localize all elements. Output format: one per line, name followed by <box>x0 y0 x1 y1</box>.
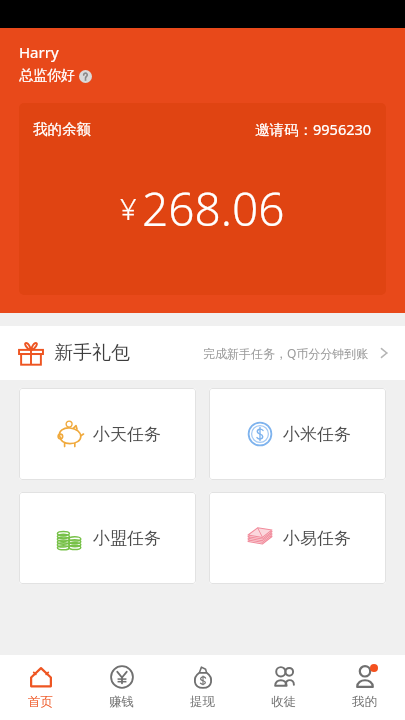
button[interactable]: 提现 <box>162 655 243 720</box>
staticText: Harry <box>19 42 59 62</box>
button[interactable]: 帮助 <box>79 70 92 83</box>
staticText: 提现 <box>190 694 215 710</box>
button[interactable]: 小米任务 <box>209 388 386 480</box>
staticText: 完成新手任务，Q币分分钟到账 <box>203 345 369 361</box>
staticText: ¥ <box>120 189 137 228</box>
button[interactable]: 首页 <box>0 655 81 720</box>
staticText: 邀请码：9956230 <box>255 119 372 139</box>
staticText: 赚钱 <box>109 694 134 710</box>
button[interactable]: 小盟任务 <box>19 492 196 584</box>
staticText: 我的 <box>352 694 377 710</box>
button[interactable]: 我的 <box>324 655 405 720</box>
button[interactable]: 收徒 <box>243 655 324 720</box>
staticText: 小盟任务 <box>93 528 161 549</box>
staticText: 总监你好 <box>19 67 75 85</box>
button[interactable]: 新手礼包 <box>0 326 405 380</box>
staticText: 小米任务 <box>283 424 351 445</box>
staticText: 小天任务 <box>93 424 161 445</box>
staticText: 首页 <box>28 694 53 710</box>
staticText: 268.06 <box>142 177 285 240</box>
button[interactable]: 小天任务 <box>19 388 196 480</box>
staticText: 小易任务 <box>283 528 351 549</box>
button[interactable]: 我的余额 <box>19 103 386 295</box>
staticText: 我的余额 <box>33 120 91 138</box>
button[interactable]: 赚钱 <box>81 655 162 720</box>
staticText: 收徒 <box>271 694 296 710</box>
button[interactable]: 小易任务 <box>209 492 386 584</box>
staticText: 新手礼包 <box>54 341 130 365</box>
